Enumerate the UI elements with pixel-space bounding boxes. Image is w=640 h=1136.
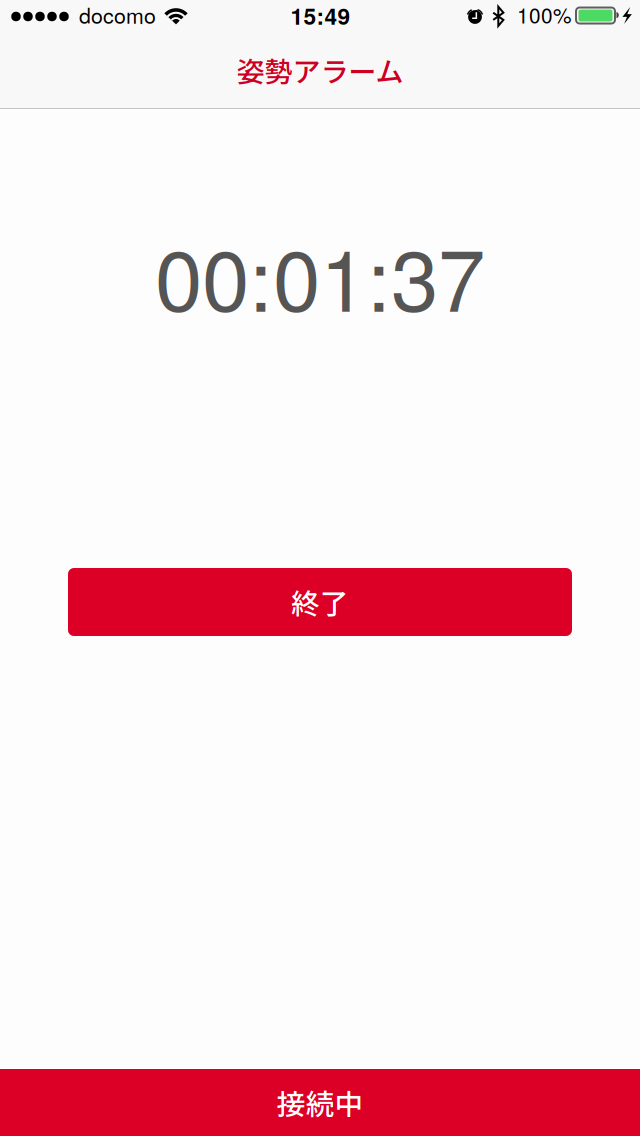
staticText: 姿勢アラーム xyxy=(236,50,403,90)
staticText: 00:01:37 xyxy=(155,214,485,336)
staticText: 15:49 xyxy=(290,0,350,32)
staticText: 終了 xyxy=(291,581,349,623)
staticText: 接続中 xyxy=(276,1082,363,1123)
button[interactable]: 終了 xyxy=(68,568,572,636)
staticText: docomo xyxy=(79,0,156,30)
staticText: 100% xyxy=(517,0,571,29)
